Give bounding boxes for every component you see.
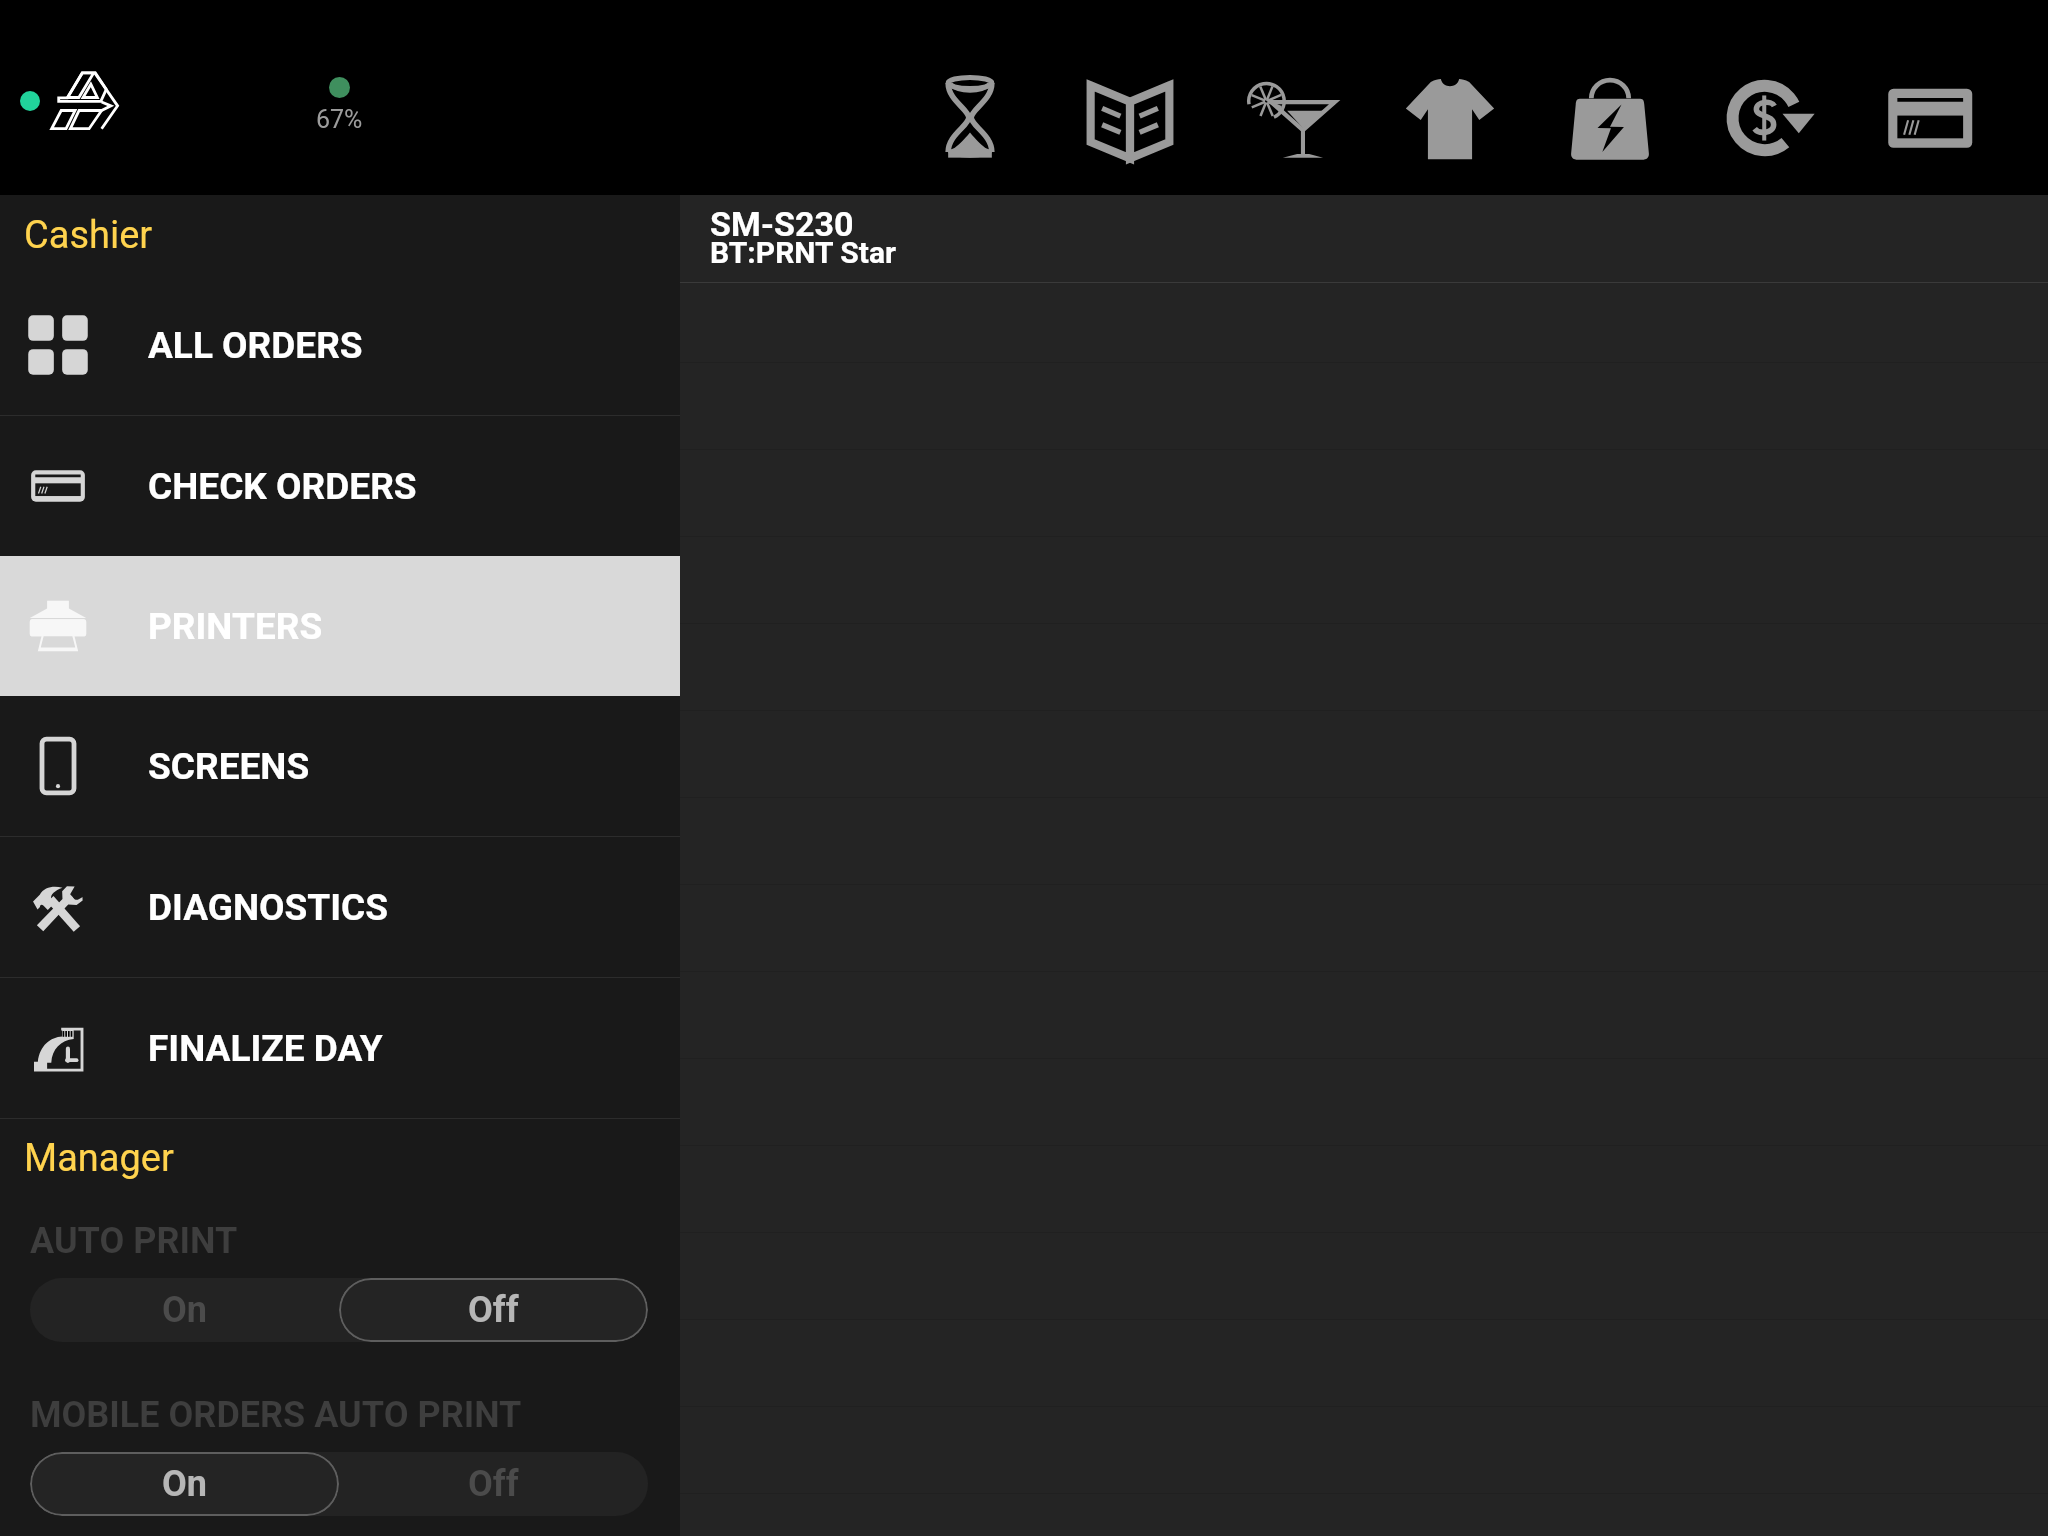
- button[interactable]: Apparel: [1370, 43, 1530, 193]
- staticText: BT:PRNT Star: [710, 235, 897, 270]
- button[interactable]: Timer: [890, 43, 1050, 193]
- staticText: DIAGNOSTICS: [148, 886, 389, 929]
- button[interactable]: Refund: [1690, 43, 1850, 193]
- staticText: Manager: [24, 1136, 174, 1181]
- staticText: 67%: [316, 105, 363, 134]
- button[interactable]: Off: [339, 1452, 648, 1516]
- button[interactable]: CHECK ORDERS: [0, 416, 680, 556]
- button[interactable]: DIAGNOSTICS: [0, 837, 680, 977]
- staticText: SM-S230: [710, 204, 854, 244]
- button[interactable]: On: [30, 1278, 339, 1342]
- button[interactable]: Drinks: [1210, 43, 1370, 193]
- button[interactable]: PRINTERS: [0, 556, 680, 696]
- button[interactable]: Off: [339, 1278, 648, 1342]
- button[interactable]: Menu book: [1050, 43, 1210, 193]
- button[interactable]: Home, connection online: [8, 23, 148, 173]
- staticText: AUTO PRINT: [30, 1220, 238, 1262]
- staticText: ALL ORDERS: [148, 324, 363, 367]
- staticText: On: [162, 1463, 207, 1505]
- staticText: MOBILE ORDERS AUTO PRINT: [30, 1394, 522, 1436]
- staticText: Off: [468, 1289, 519, 1331]
- staticText: Cashier: [24, 213, 153, 258]
- button[interactable]: SCREENS: [0, 696, 680, 836]
- staticText: FINALIZE DAY: [148, 1027, 383, 1070]
- staticText: Off: [468, 1463, 519, 1505]
- button[interactable]: Card payment: [1850, 43, 2010, 193]
- staticText: PRINTERS: [148, 605, 323, 648]
- staticText: SCREENS: [148, 745, 310, 788]
- button[interactable]: FINALIZE DAY: [0, 978, 680, 1118]
- button[interactable]: On: [30, 1452, 339, 1516]
- button[interactable]: ALL ORDERS: [0, 275, 680, 415]
- button[interactable]: Quick sale: [1530, 43, 1690, 193]
- staticText: On: [162, 1289, 207, 1331]
- staticText: CHECK ORDERS: [148, 465, 417, 508]
